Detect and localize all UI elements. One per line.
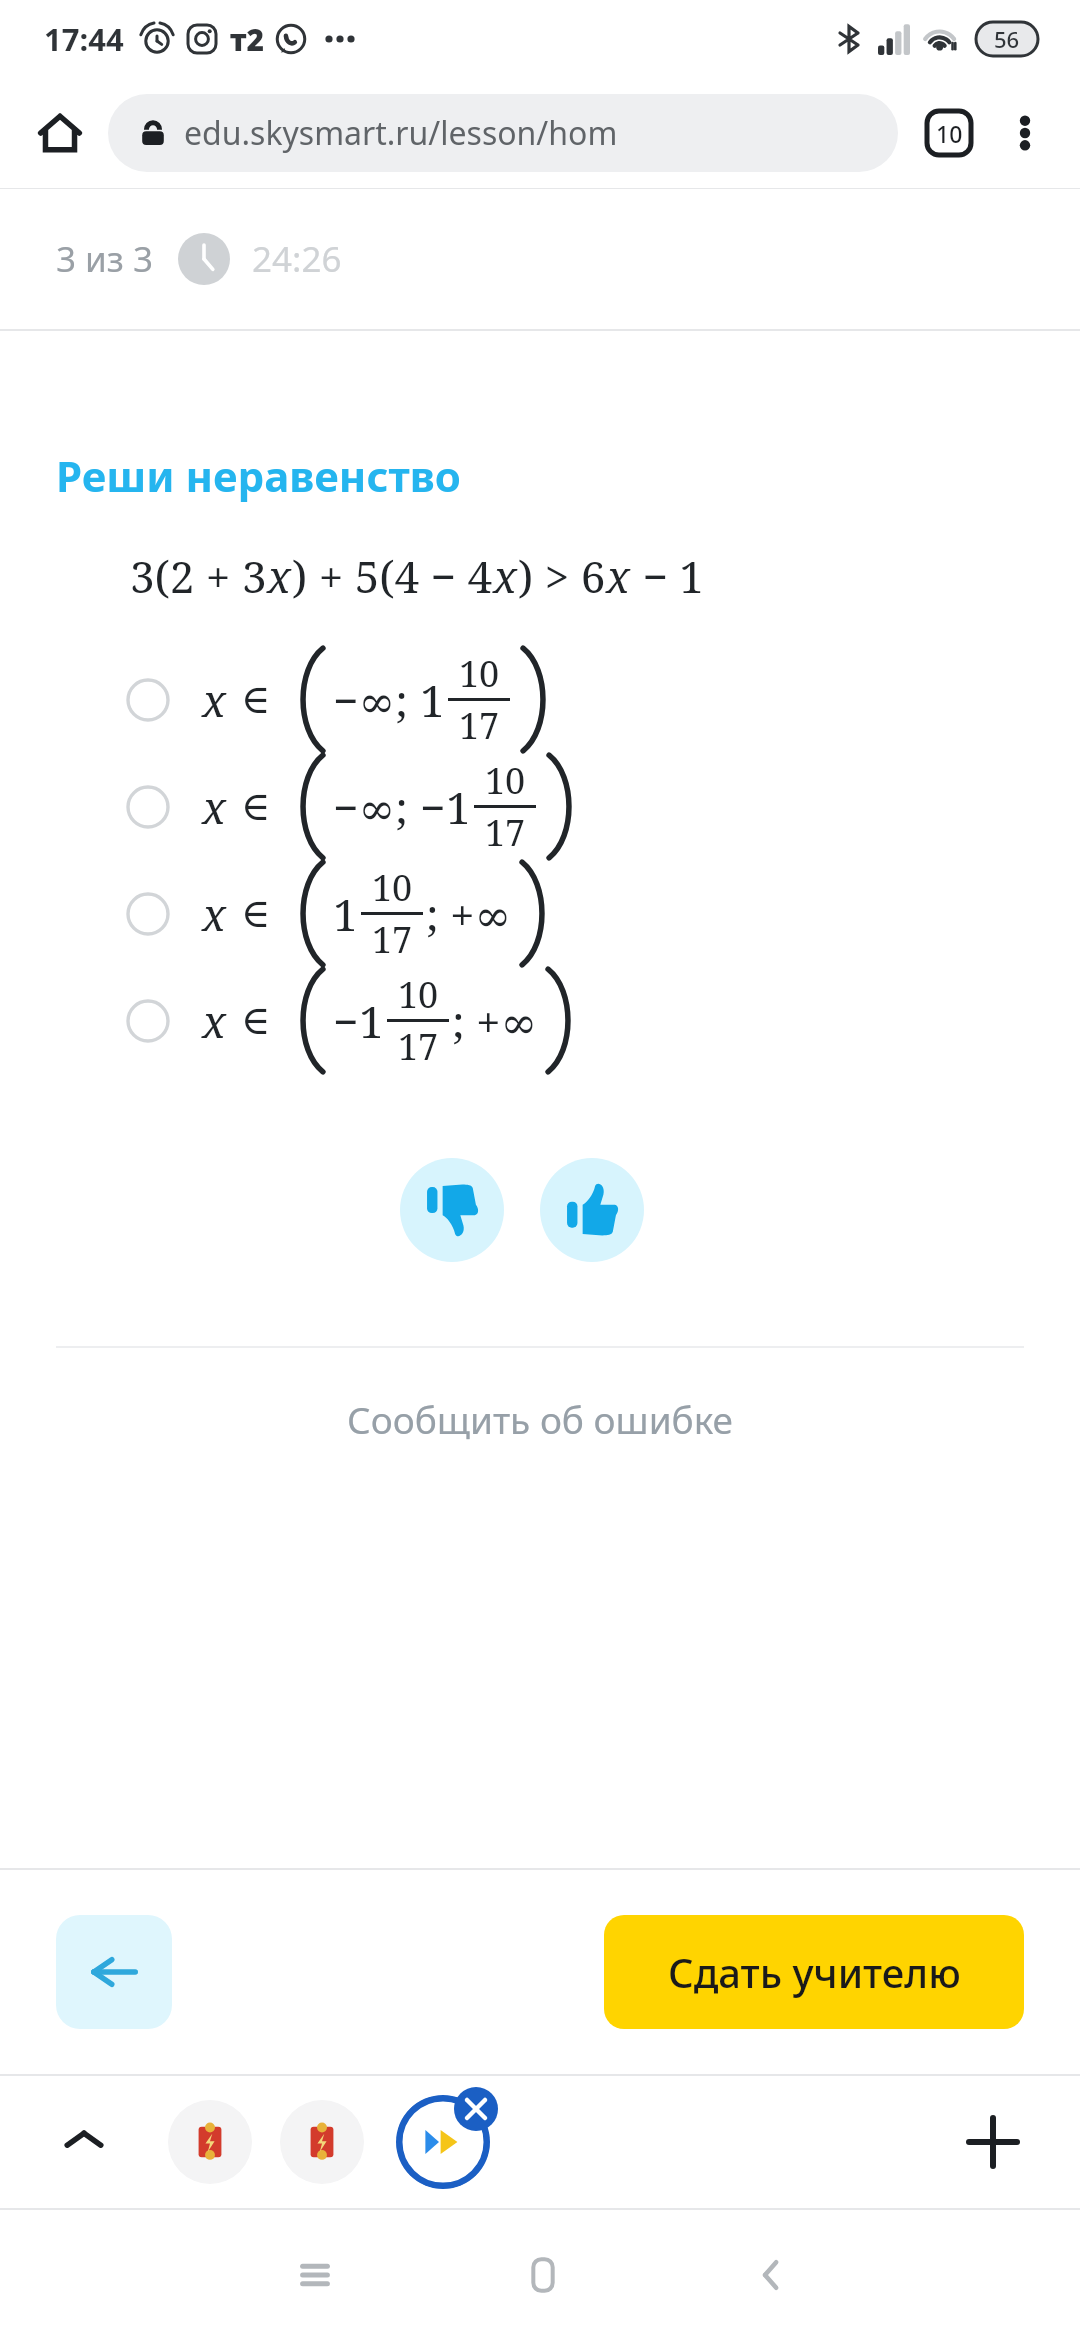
- staticText: −: [420, 777, 446, 837]
- staticText: x: [202, 777, 227, 837]
- button[interactable]: New tab: [950, 2099, 1036, 2185]
- button[interactable]: edu.skysmart.ru/lesson/hom: [108, 94, 898, 172]
- button[interactable]: Сдать учителю: [604, 1915, 1024, 2029]
- staticText: 3 из 3: [56, 235, 154, 283]
- button[interactable]: x: [0, 646, 1080, 753]
- staticText: 17: [372, 915, 413, 964]
- button[interactable]: Сообщить об ошибке: [0, 1394, 1080, 1444]
- staticText: 56: [994, 24, 1020, 54]
- staticText: −∞;: [333, 670, 420, 730]
- button[interactable]: Back: [56, 1915, 172, 2029]
- staticText: 10: [398, 970, 439, 1019]
- staticText: ) > 6: [518, 546, 606, 606]
- staticText: −∞;: [333, 777, 420, 837]
- staticText: 1: [333, 884, 358, 944]
- staticText: 17: [485, 808, 526, 857]
- staticText: x: [606, 546, 631, 606]
- staticText: x: [202, 991, 227, 1051]
- staticText: x: [202, 884, 227, 944]
- staticText: x: [493, 546, 518, 606]
- button[interactable]: x: [0, 967, 1080, 1074]
- button[interactable]: Close tab: [454, 2087, 498, 2131]
- button[interactable]: Like: [540, 1158, 644, 1262]
- staticText: 1: [359, 991, 384, 1051]
- button[interactable]: Back: [728, 2230, 818, 2320]
- button[interactable]: Home: [498, 2230, 588, 2320]
- staticText: 17:44: [44, 18, 124, 60]
- staticText: Реши неравенство: [56, 447, 461, 504]
- staticText: ∈: [241, 783, 271, 830]
- staticText: 10: [936, 118, 963, 149]
- staticText: ) + 5(4 − 4: [292, 546, 493, 606]
- staticText: 1: [420, 670, 445, 730]
- button[interactable]: Active tab: [396, 2095, 490, 2189]
- staticText: x: [267, 546, 292, 606]
- button[interactable]: More options: [992, 100, 1058, 166]
- button[interactable]: Tab: [280, 2100, 364, 2184]
- staticText: ; +∞: [426, 884, 512, 944]
- staticText: 10: [372, 863, 413, 912]
- staticText: Сообщить об ошибке: [347, 1394, 733, 1444]
- staticText: 17: [398, 1022, 439, 1071]
- staticText: ∈: [241, 890, 271, 937]
- staticText: 3(2 + 3: [130, 546, 267, 606]
- staticText: ∈: [241, 676, 271, 723]
- staticText: x: [202, 670, 227, 730]
- button[interactable]: Recents: [270, 2230, 360, 2320]
- button[interactable]: Tabs: [916, 100, 982, 166]
- staticText: − 1: [631, 546, 704, 606]
- staticText: т2: [230, 19, 265, 60]
- staticText: 1: [446, 777, 471, 837]
- staticText: edu.skysmart.ru/lesson/hom: [184, 111, 618, 155]
- staticText: Сдать учителю: [668, 1945, 961, 1999]
- staticText: −: [333, 991, 359, 1051]
- button[interactable]: Expand: [44, 2102, 124, 2182]
- staticText: 10: [485, 756, 526, 805]
- button[interactable]: Home: [22, 95, 98, 171]
- staticText: ∈: [241, 997, 271, 1044]
- staticText: 24:26: [252, 235, 342, 283]
- button[interactable]: Tab: [168, 2100, 252, 2184]
- button[interactable]: Dislike: [400, 1158, 504, 1262]
- staticText: 17: [459, 701, 500, 750]
- staticText: 10: [459, 649, 500, 698]
- staticText: ; +∞: [452, 991, 538, 1051]
- button[interactable]: x: [0, 753, 1080, 860]
- button[interactable]: x: [0, 860, 1080, 967]
